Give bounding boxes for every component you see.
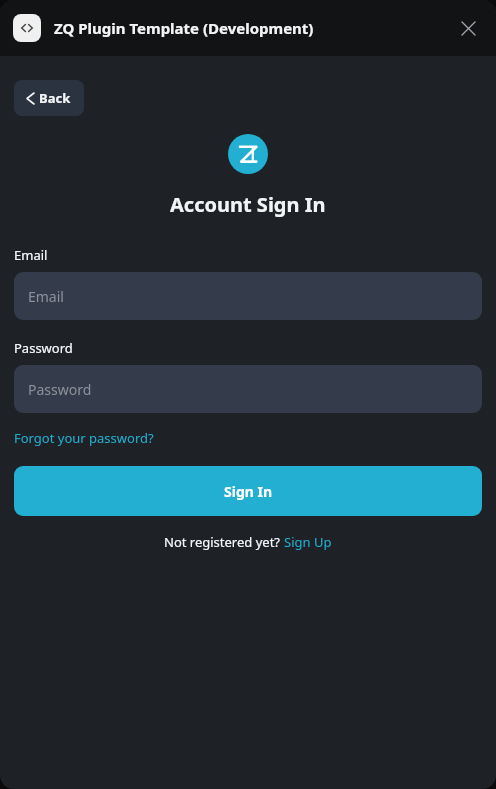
button[interactable]: Password xyxy=(14,365,482,413)
staticText: Email xyxy=(28,287,64,306)
staticText: Password xyxy=(14,339,73,357)
staticText: Sign Up xyxy=(284,533,332,551)
staticText: Sign In xyxy=(224,482,273,501)
button[interactable]: Sign In xyxy=(14,466,482,516)
staticText: Password xyxy=(28,380,92,399)
staticText: Forgot your password? xyxy=(14,429,154,447)
staticText: Not registered yet? xyxy=(164,533,284,551)
button[interactable]: Email xyxy=(14,272,482,320)
button[interactable]: Close xyxy=(454,14,482,42)
staticText: Account Sign In xyxy=(170,191,326,218)
staticText: Email xyxy=(14,246,48,264)
staticText: ZQ Plugin Template (Development) xyxy=(54,18,314,38)
button[interactable]: Back xyxy=(14,80,84,116)
button[interactable]: Sign Up xyxy=(284,533,332,551)
button[interactable]: Forgot your password? xyxy=(14,429,154,447)
staticText: Back xyxy=(39,89,71,107)
